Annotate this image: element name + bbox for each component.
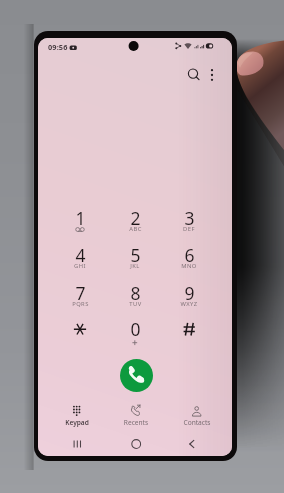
staticText: JKL (130, 262, 140, 270)
button[interactable]: More options (204, 66, 220, 84)
button[interactable] (108, 238, 162, 274)
staticText: 6 (184, 243, 195, 267)
button[interactable] (162, 238, 216, 274)
staticText: 3 (184, 206, 195, 230)
button[interactable] (53, 275, 107, 311)
button[interactable] (168, 402, 226, 429)
staticText: TUV (129, 300, 142, 308)
button[interactable] (108, 275, 162, 311)
button[interactable] (108, 201, 162, 237)
button[interactable] (162, 275, 216, 311)
button[interactable] (108, 311, 162, 347)
staticText: Contacts (172, 418, 222, 427)
staticText: 1 (75, 206, 86, 230)
staticText: 4 (75, 243, 86, 267)
staticText: 9 (184, 281, 195, 305)
staticText: MNO (181, 262, 197, 270)
staticText: DEF (183, 225, 195, 233)
staticText: Keypad (52, 418, 102, 427)
button[interactable] (107, 402, 165, 429)
staticText: WXYZ (180, 300, 198, 308)
button[interactable] (53, 201, 107, 237)
button[interactable]: Search (185, 66, 203, 84)
staticText: 5 (130, 243, 141, 267)
staticText: 0 (130, 317, 141, 341)
staticText: PQRS (72, 300, 89, 308)
staticText: ABC (129, 225, 142, 233)
staticText: 09:56 (48, 42, 68, 51)
staticText: GHI (74, 262, 86, 270)
staticText: 8 (130, 281, 141, 305)
button[interactable] (53, 311, 107, 347)
button[interactable] (162, 201, 216, 237)
staticText: 2 (130, 206, 141, 230)
staticText: Recents (111, 418, 161, 427)
staticText: 7 (75, 281, 86, 305)
button[interactable]: Call (120, 359, 153, 392)
button[interactable] (162, 311, 216, 347)
button[interactable] (53, 238, 107, 274)
button[interactable] (48, 402, 106, 429)
